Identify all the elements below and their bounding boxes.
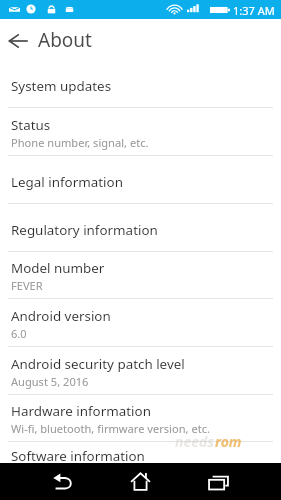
button[interactable]: Recent apps [194,463,242,500]
staticText: Hardware information [11,402,151,420]
button[interactable]: Android security patch level [0,347,281,395]
staticText: FEVER [11,278,43,293]
staticText: August 5, 2016 [11,374,89,389]
button[interactable]: Back [38,463,86,500]
button[interactable]: Hardware information [0,394,281,442]
button[interactable]: Back [0,19,37,59]
staticText: 6.0 [11,326,27,341]
staticText: Legal information [11,173,123,191]
button[interactable]: System updates [0,60,281,108]
button[interactable]: Android version [0,299,281,347]
staticText: About [38,27,92,53]
staticText: Model number [11,259,105,277]
staticText: Android security patch level [11,355,185,373]
button[interactable]: Legal information [0,156,281,204]
staticText: Software information [11,447,145,463]
staticText: 1:37 AM [233,3,275,18]
staticText: rom [215,432,242,451]
button[interactable]: Regulatory information [0,204,281,252]
staticText: needs [175,432,215,451]
button[interactable]: Home [116,463,164,500]
button[interactable]: Model number [0,251,281,299]
button[interactable]: Status [0,108,281,156]
button[interactable]: Software information [0,442,281,463]
staticText: Phone number, signal, etc. [11,135,149,150]
staticText: Status [11,116,51,134]
staticText: Android version [11,307,111,325]
staticText: Wi-fi, bluetooth, firmware version, etc. [11,421,210,436]
staticText: Regulatory information [11,221,158,239]
staticText: System updates [11,77,112,95]
